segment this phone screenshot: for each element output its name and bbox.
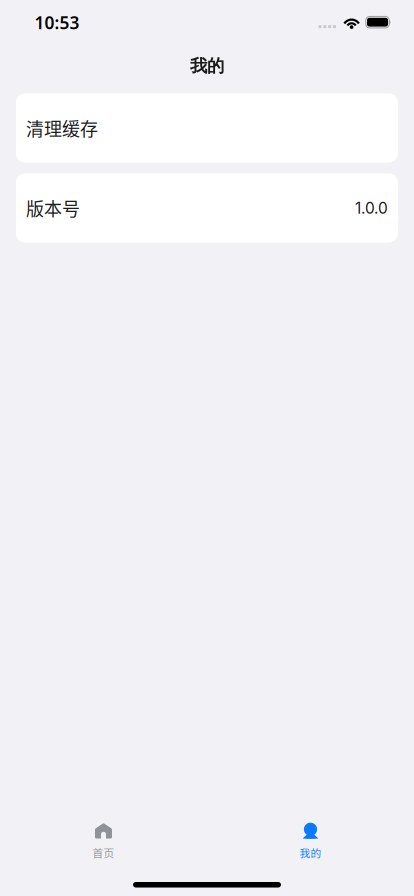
button[interactable]: 首页 [0,819,207,869]
button[interactable]: 版本号 [16,173,398,242]
staticText: 我的 [190,55,224,77]
staticText: 我的 [299,845,321,860]
staticText: 清理缓存 [26,115,98,141]
staticText: 1.0.0 [355,199,388,217]
staticText: 10:53 [34,11,79,34]
button[interactable]: 清理缓存 [16,93,398,162]
staticText: 首页 [92,845,114,860]
staticText: 版本号 [26,195,80,221]
button[interactable]: 我的 [207,819,414,869]
